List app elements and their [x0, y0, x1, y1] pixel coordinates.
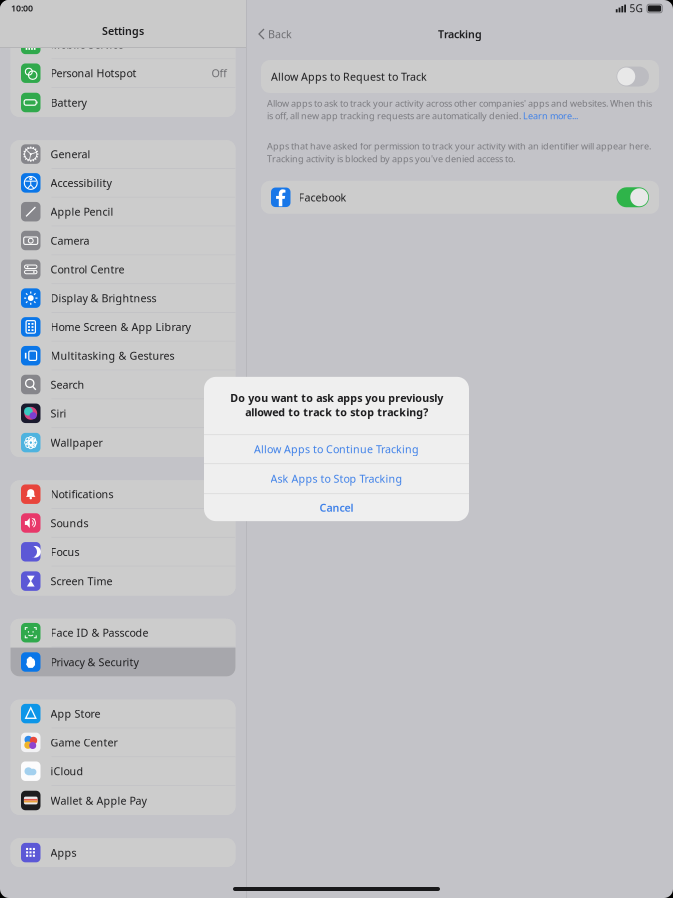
staticText: Accessibility — [50, 176, 111, 190]
button[interactable]: Camera — [10, 227, 235, 255]
staticText: Personal Hotspot — [50, 66, 136, 80]
button[interactable]: General — [10, 140, 235, 169]
button[interactable]: Battery — [10, 88, 235, 117]
staticText: Focus — [50, 545, 79, 559]
button[interactable]: Siri — [10, 399, 235, 428]
button[interactable]: Allow Apps to Continue Tracking — [204, 435, 469, 463]
staticText: Back — [268, 27, 292, 41]
staticText: 5G — [629, 1, 642, 15]
button[interactable]: Focus — [10, 538, 235, 567]
staticText: Sounds — [50, 516, 88, 530]
staticText: iCloud — [50, 764, 83, 778]
staticText: 10:00 — [11, 2, 33, 14]
staticText: Battery — [50, 95, 86, 110]
button[interactable]: Sounds — [10, 509, 235, 538]
button[interactable]: Home Screen & App Library — [10, 313, 235, 342]
button[interactable]: Screen Time — [10, 567, 235, 595]
button[interactable]: Notifications — [10, 480, 235, 509]
staticText: Allow Apps to Continue Tracking — [254, 442, 419, 456]
staticText: Facebook — [298, 190, 346, 204]
staticText: Settings — [102, 24, 144, 38]
staticText: Ask Apps to Stop Tracking — [270, 472, 402, 486]
button[interactable]: Apple Pencil — [10, 198, 235, 227]
button[interactable]: Control Centre — [10, 255, 235, 284]
button[interactable]: Accessibility — [10, 169, 235, 198]
staticText: Display & Brightness — [50, 291, 156, 305]
button[interactable]: iCloud — [10, 757, 235, 786]
button[interactable]: Back — [247, 21, 292, 47]
button[interactable]: Face ID & Passcode — [10, 619, 235, 648]
staticText: Camera — [50, 233, 89, 248]
staticText: Apple Pencil — [50, 205, 113, 219]
staticText: Control Centre — [50, 262, 124, 276]
staticText: Screen Time — [50, 574, 112, 588]
button[interactable]: Mobile Service — [10, 30, 235, 59]
button[interactable]: Game Center — [10, 728, 235, 757]
staticText: Allow apps to ask to track your activity… — [267, 97, 652, 109]
button[interactable]: Wallet & Apple Pay — [10, 786, 235, 815]
button[interactable]: Personal Hotspot — [10, 59, 235, 88]
staticText: Tracking — [438, 27, 482, 41]
button[interactable]: Facebook — [261, 181, 659, 214]
staticText: Learn more... — [523, 109, 578, 122]
button[interactable]: Cancel — [204, 494, 469, 521]
staticText: Privacy & Security — [50, 655, 138, 669]
button[interactable]: Learn more... — [523, 109, 578, 122]
staticText: Apps that have asked for permission to t… — [267, 140, 651, 152]
button[interactable]: Privacy & Security — [10, 648, 235, 676]
staticText: Wallpaper — [50, 435, 102, 450]
button[interactable]: Apps — [10, 838, 235, 867]
staticText: Face ID & Passcode — [50, 626, 148, 640]
button[interactable]: Ask Apps to Stop Tracking — [204, 464, 469, 493]
staticText: Siri — [50, 406, 66, 420]
staticText: App Store — [50, 706, 100, 721]
staticText: Tracking activity is blocked by apps you… — [267, 152, 515, 165]
button[interactable]: App Store — [10, 700, 235, 728]
staticText: Allow Apps to Request to Track — [271, 69, 427, 84]
staticText: Do you want to ask apps you previously a… — [230, 391, 443, 419]
staticText: Cancel — [319, 501, 353, 515]
staticText: Off — [211, 66, 226, 80]
button[interactable]: Search — [10, 371, 235, 399]
button[interactable]: Wallpaper — [10, 428, 235, 457]
button[interactable]: Allow Apps to Request to Track — [261, 60, 659, 93]
staticText: Wallet & Apple Pay — [50, 793, 146, 808]
staticText: Game Center — [50, 735, 117, 749]
staticText: Notifications — [50, 487, 113, 501]
staticText: Mobile Service — [50, 37, 123, 51]
staticText: Home Screen & App Library — [50, 320, 190, 334]
staticText: Multitasking & Gestures — [50, 349, 174, 363]
staticText: is off, all new app tracking requests ar… — [267, 109, 523, 122]
staticText: General — [50, 147, 90, 161]
staticText: Search — [50, 377, 84, 392]
button[interactable]: Display & Brightness — [10, 284, 235, 313]
button[interactable]: Multitasking & Gestures — [10, 342, 235, 371]
staticText: Apps — [50, 845, 76, 860]
